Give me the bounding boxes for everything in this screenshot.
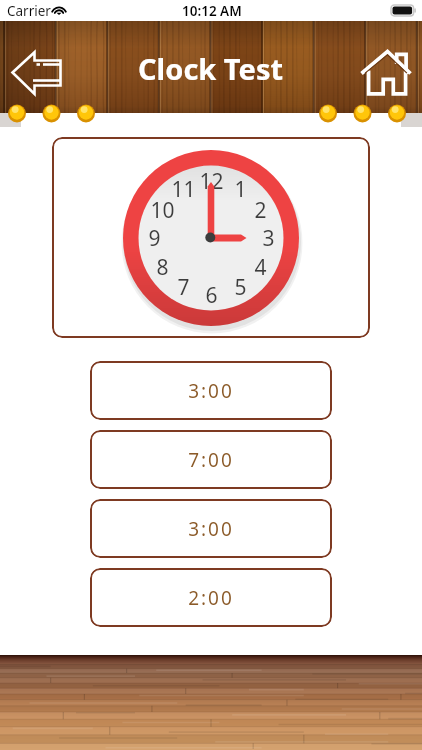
button[interactable]: 3:00 xyxy=(90,361,332,420)
staticText: 10 xyxy=(150,196,175,225)
staticText: 12 xyxy=(199,167,224,196)
staticText: 6 xyxy=(205,281,218,310)
button[interactable]: 7:00 xyxy=(90,430,332,489)
staticText: 5 xyxy=(234,273,247,302)
staticText: 1 xyxy=(234,175,247,204)
staticText: 7 xyxy=(177,273,190,302)
staticText: 3 xyxy=(262,224,275,253)
staticText: 9 xyxy=(148,224,161,253)
button[interactable]: 3:00 xyxy=(90,499,332,558)
button[interactable]: 2:00 xyxy=(90,568,332,627)
button[interactable]: Back xyxy=(11,51,62,95)
staticText: 3:00 xyxy=(188,516,234,542)
staticText: 2:00 xyxy=(188,585,234,611)
staticText: 7:00 xyxy=(188,447,234,473)
staticText: 4 xyxy=(254,253,267,282)
staticText: 8 xyxy=(156,253,169,282)
staticText: Carrier xyxy=(7,2,51,20)
staticText: 11 xyxy=(171,175,196,204)
staticText: Clock Test xyxy=(138,49,284,88)
staticText: 10:12 AM xyxy=(182,2,242,20)
button[interactable]: Home xyxy=(361,51,411,95)
staticText: 3:00 xyxy=(188,378,234,404)
staticText: 2 xyxy=(254,196,267,225)
